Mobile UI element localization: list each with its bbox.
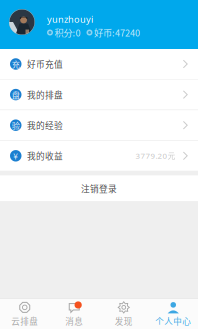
staticText: 我的收益 — [27, 149, 63, 162]
button[interactable]: 注销登录 — [0, 175, 198, 202]
staticText: 我的经验 — [27, 119, 63, 131]
staticText: 验 — [12, 119, 20, 131]
staticText: 发现 — [115, 315, 133, 327]
staticText: 3779.20元 — [136, 150, 176, 161]
staticText: yunzhouyi — [47, 13, 93, 25]
staticText: 我的排盘 — [27, 88, 63, 101]
button[interactable]: 云排盘 — [0, 297, 49, 329]
button[interactable]: ¥ — [0, 141, 198, 171]
staticText: 个人中心 — [155, 315, 191, 327]
staticText: 消息 — [65, 315, 83, 327]
staticText: 好币充值 — [27, 58, 63, 70]
button[interactable]: 充 — [0, 49, 198, 80]
button[interactable]: 个人中心 — [148, 297, 198, 329]
button[interactable]: 消息 — [49, 297, 99, 329]
button[interactable]: 验 — [0, 110, 198, 141]
staticText: 注销登录 — [81, 182, 117, 195]
staticText: 盘 — [12, 89, 20, 101]
staticText: 充 — [12, 58, 20, 70]
button[interactable]: 发现 — [99, 297, 148, 329]
staticText: 好币:47240 — [94, 26, 140, 39]
staticText: ¥ — [13, 150, 18, 162]
staticText: 积分:0 — [54, 26, 80, 39]
button[interactable]: 盘 — [0, 80, 198, 110]
staticText: 云排盘 — [11, 315, 38, 327]
